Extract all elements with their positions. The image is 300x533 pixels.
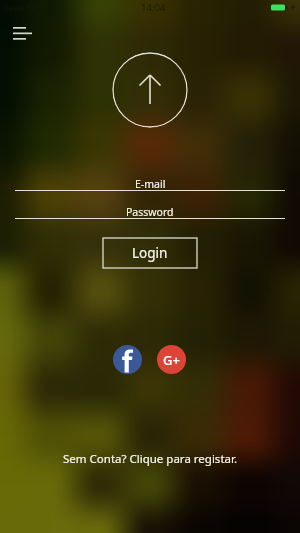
button[interactable]: Sign in with Google <box>157 345 186 374</box>
button[interactable]: Login <box>103 238 197 268</box>
staticText: Login <box>132 244 168 262</box>
staticText: 14:04 <box>141 1 166 14</box>
button[interactable]: Menu <box>9 20 39 50</box>
button[interactable]: Sem Conta? Clique para registar. <box>0 450 300 468</box>
button[interactable]: Upload <box>112 52 188 128</box>
staticText: Sem Conta? Clique para registar. <box>63 451 237 467</box>
staticText: E-mail <box>135 177 166 191</box>
staticText: Password <box>126 205 174 219</box>
staticText: G+ <box>163 351 180 369</box>
staticText: Rede <box>3 1 25 13</box>
button[interactable]: Sign in with Facebook <box>113 345 142 374</box>
